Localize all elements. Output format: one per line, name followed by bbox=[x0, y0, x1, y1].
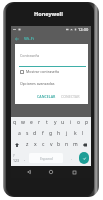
staticText: . bbox=[71, 156, 72, 161]
staticText: ?123 bbox=[13, 153, 20, 163]
staticText: h bbox=[57, 130, 61, 137]
button[interactable]: CONECTAR bbox=[60, 93, 81, 100]
button[interactable]: c bbox=[39, 139, 47, 150]
staticText: y bbox=[54, 119, 57, 126]
staticText: j bbox=[66, 130, 68, 137]
button[interactable]: Home bbox=[46, 167, 56, 177]
button[interactable]: v bbox=[47, 139, 55, 150]
button[interactable]: s bbox=[23, 128, 31, 139]
staticText: d bbox=[33, 130, 37, 137]
button[interactable]: Opciones avanzadas bbox=[20, 81, 55, 86]
staticText: k bbox=[74, 130, 77, 137]
button[interactable]: Shift bbox=[11, 139, 23, 150]
button[interactable]: b bbox=[55, 139, 63, 150]
button[interactable]: a bbox=[15, 128, 23, 139]
button[interactable]: x bbox=[31, 139, 39, 150]
button[interactable]: n bbox=[63, 139, 71, 150]
button[interactable]: h bbox=[55, 128, 63, 139]
staticText: u bbox=[61, 119, 65, 126]
button[interactable]: p bbox=[83, 117, 91, 128]
staticText: , bbox=[24, 156, 25, 161]
button[interactable]: z bbox=[23, 139, 31, 150]
staticText: g bbox=[49, 130, 53, 137]
staticText: Honeywell bbox=[34, 10, 63, 17]
button[interactable]: Delete bbox=[79, 139, 91, 150]
button[interactable]: r bbox=[35, 117, 43, 128]
staticText: o bbox=[77, 119, 81, 126]
button[interactable]: m bbox=[71, 139, 79, 150]
staticText: CANCELAR bbox=[37, 94, 56, 99]
staticText: p bbox=[85, 119, 89, 126]
button[interactable]: t bbox=[43, 117, 51, 128]
staticText: a bbox=[18, 130, 21, 137]
button[interactable]: e bbox=[27, 117, 35, 128]
staticText: i bbox=[70, 119, 72, 126]
button[interactable]: w bbox=[19, 117, 27, 128]
staticText: z bbox=[26, 141, 29, 148]
button[interactable]: ?123 bbox=[13, 153, 20, 163]
button[interactable]: f bbox=[39, 128, 47, 139]
button[interactable]: i bbox=[67, 117, 75, 128]
staticText: r bbox=[38, 119, 41, 126]
button[interactable]: CANCELAR bbox=[36, 93, 57, 100]
button[interactable]: Recents bbox=[69, 167, 79, 177]
staticText: f bbox=[42, 130, 44, 137]
button[interactable]: u bbox=[59, 117, 67, 128]
staticText: v bbox=[50, 141, 53, 148]
staticText: Wi-Fi bbox=[24, 36, 35, 42]
button[interactable]: , bbox=[22, 153, 27, 163]
staticText: w bbox=[21, 119, 25, 126]
button[interactable]: Enter bbox=[79, 152, 89, 164]
staticText: 12:00 bbox=[78, 27, 89, 32]
staticText: s bbox=[26, 130, 29, 137]
staticText: e bbox=[30, 119, 33, 126]
staticText: n bbox=[65, 141, 69, 148]
staticText: x bbox=[34, 141, 37, 148]
staticText: c bbox=[42, 141, 45, 148]
button[interactable]: Back bbox=[24, 167, 34, 177]
staticText: l bbox=[82, 130, 84, 137]
button[interactable]: l bbox=[79, 128, 87, 139]
staticText: q bbox=[13, 119, 17, 126]
button[interactable]: d bbox=[31, 128, 39, 139]
button[interactable]: Espanol bbox=[29, 153, 63, 163]
button[interactable]: Back bbox=[13, 35, 20, 42]
button[interactable]: j bbox=[63, 128, 71, 139]
staticText: Contraseña bbox=[20, 53, 40, 58]
button[interactable]: q bbox=[11, 117, 19, 128]
staticText: b bbox=[57, 141, 61, 148]
staticText: CONECTAR bbox=[61, 94, 80, 99]
button[interactable]: y bbox=[51, 117, 59, 128]
staticText: Espanol bbox=[40, 156, 53, 161]
button[interactable]: Mostrar contraseña bbox=[19, 68, 61, 75]
button[interactable]: k bbox=[71, 128, 79, 139]
staticText: m bbox=[73, 141, 78, 148]
button[interactable]: o bbox=[75, 117, 83, 128]
button[interactable]: g bbox=[47, 128, 55, 139]
staticText: Mostrar contraseña bbox=[26, 69, 60, 74]
staticText: t bbox=[46, 119, 48, 126]
